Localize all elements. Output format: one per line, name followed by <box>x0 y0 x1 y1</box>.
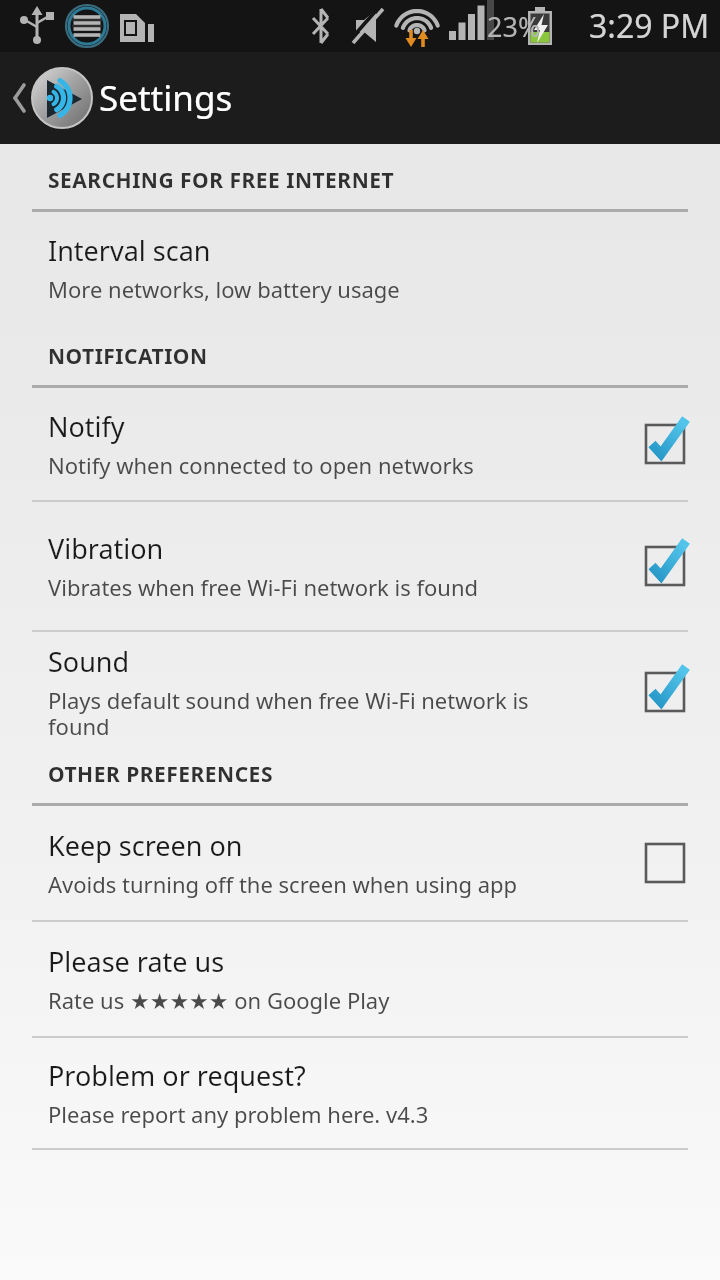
button[interactable]: Keep screen on, not checked <box>610 806 720 920</box>
staticText: Sound <box>48 643 130 680</box>
staticText: 3:29 PM <box>589 4 710 48</box>
button[interactable]: Vibration, checked <box>610 502 720 630</box>
button[interactable]: Sound <box>0 632 720 752</box>
button[interactable]: Navigate up, Settings <box>0 52 720 144</box>
staticText: NOTIFICATION <box>48 342 208 371</box>
staticText: Please rate us <box>48 943 225 980</box>
staticText: SEARCHING FOR FREE INTERNET <box>48 166 395 195</box>
staticText: Keep screen on <box>48 827 243 864</box>
button[interactable]: Please rate us <box>0 922 720 1036</box>
staticText: Rate us ★★★★★ on Google Play <box>48 985 390 1015</box>
button[interactable]: Problem or request? <box>0 1038 720 1148</box>
button[interactable]: Interval scan <box>0 212 720 324</box>
staticText: Settings <box>99 74 233 122</box>
staticText: Plays default sound when free Wi-Fi netw… <box>48 685 529 742</box>
button[interactable]: Notify <box>0 388 720 500</box>
staticText: OTHER PREFERENCES <box>48 760 273 789</box>
button[interactable]: Keep screen on <box>0 806 720 920</box>
button[interactable]: Notify, checked <box>610 388 720 500</box>
staticText: Please report any problem here. v4.3 <box>48 1099 429 1129</box>
staticText: 23% <box>487 8 541 45</box>
staticText: Avoids turning off the screen when using… <box>48 869 518 899</box>
button[interactable]: Sound, checked <box>610 632 720 752</box>
staticText: More networks, low battery usage <box>48 274 400 304</box>
staticText: Notify <box>48 408 125 445</box>
staticText: Vibration <box>48 530 164 567</box>
button[interactable]: Vibration <box>0 502 720 630</box>
staticText: Vibrates when free Wi-Fi network is foun… <box>48 572 479 602</box>
staticText: Notify when connected to open networks <box>48 450 474 480</box>
staticText: Interval scan <box>48 232 211 269</box>
staticText: Problem or request? <box>48 1057 306 1094</box>
